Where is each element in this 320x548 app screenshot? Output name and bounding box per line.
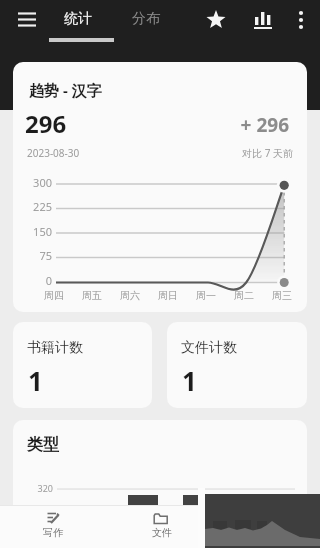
staticText: 1 (182, 363, 197, 398)
staticText: + 296 (27, 112, 289, 138)
staticText: 周四 (44, 289, 64, 302)
button[interactable] (203, 7, 229, 33)
staticText: 2023-08-30 (27, 146, 80, 160)
button[interactable]: 写作 (23, 505, 83, 548)
staticText: 周五 (82, 289, 102, 302)
button[interactable]: 文件计数 (167, 322, 307, 408)
button[interactable] (291, 7, 313, 37)
button[interactable]: 文件 (131, 505, 191, 548)
staticText: 类型 (27, 435, 59, 455)
button[interactable]: 统计 (49, 0, 114, 44)
staticText: 对比 7 天前 (27, 146, 293, 160)
staticText: 0 (13, 273, 52, 288)
staticText: 300 (13, 175, 52, 190)
button[interactable]: 趋势 - 汉字 (13, 62, 307, 312)
staticText: 统计 (64, 10, 92, 28)
button[interactable] (250, 7, 276, 33)
button[interactable]: 分布 (118, 0, 174, 44)
button[interactable]: 类型 (13, 420, 307, 548)
staticText: 75 (13, 248, 52, 263)
staticText: 文件 (152, 526, 172, 539)
staticText: 1 (28, 363, 43, 398)
staticText: 分布 (132, 10, 160, 28)
staticText: 周三 (272, 289, 292, 302)
staticText: 周二 (234, 289, 254, 302)
staticText: 周六 (120, 289, 140, 302)
staticText: 296 (25, 107, 67, 140)
staticText: 趋势 - 汉字 (29, 80, 102, 100)
button[interactable]: 书籍计数 (13, 322, 152, 408)
staticText: 225 (13, 199, 52, 214)
staticText: 文件计数 (181, 339, 237, 357)
staticText: 周日 (158, 289, 178, 302)
staticText: 320 (21, 482, 53, 494)
button[interactable] (12, 8, 42, 38)
staticText: 150 (13, 224, 52, 239)
staticText: 周一 (196, 289, 216, 302)
staticText: 书籍计数 (27, 339, 83, 357)
staticText: 写作 (43, 526, 63, 539)
